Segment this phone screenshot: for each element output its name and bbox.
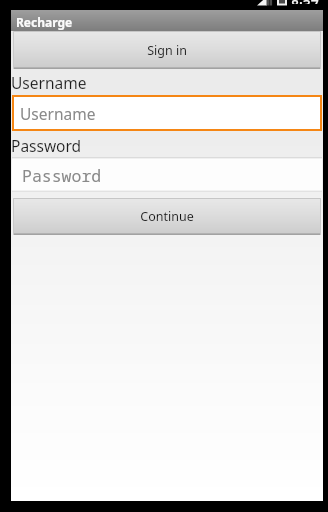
staticText: Password: [11, 135, 82, 156]
button[interactable]: Username: [12, 95, 322, 131]
button[interactable]: Sign in: [13, 31, 321, 69]
other: Status bar: [0, 0, 328, 9]
staticText: Username: [20, 103, 96, 124]
staticText: Password: [22, 164, 102, 186]
staticText: Recharge: [16, 14, 73, 30]
staticText: Sign in: [147, 42, 187, 59]
button[interactable]: Password: [12, 157, 322, 192]
staticText: Continue: [140, 208, 194, 225]
button[interactable]: Continue: [13, 198, 321, 235]
staticText: Username: [11, 72, 87, 93]
staticText: 8:37: [291, 0, 319, 4]
